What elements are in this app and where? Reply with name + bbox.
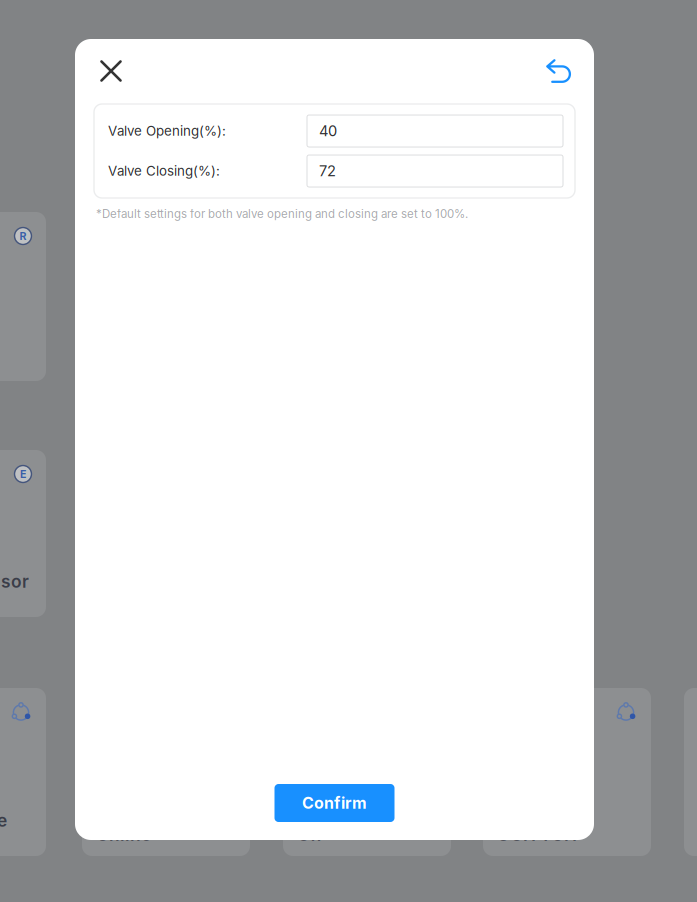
staticText: Off (297, 824, 323, 845)
staticText: Confirm (302, 793, 367, 813)
staticText: E (20, 467, 26, 480)
staticText: *Default settings for both valve opening… (96, 207, 468, 221)
staticText: 40 (319, 122, 337, 140)
staticText: UGH TCH (497, 824, 577, 845)
button[interactable]: Close (93, 53, 129, 89)
button[interactable]: Confirm (274, 784, 394, 822)
staticText: 72 (319, 162, 336, 180)
staticText: Online (96, 824, 151, 845)
staticText: Valve Opening(%): (108, 123, 226, 139)
staticText: Valve Closing(%): (108, 163, 220, 179)
staticText: R (19, 229, 26, 242)
staticText: Device (0, 810, 7, 831)
button[interactable]: Reset to defaults (539, 53, 578, 89)
staticText: Sensor (0, 571, 29, 592)
